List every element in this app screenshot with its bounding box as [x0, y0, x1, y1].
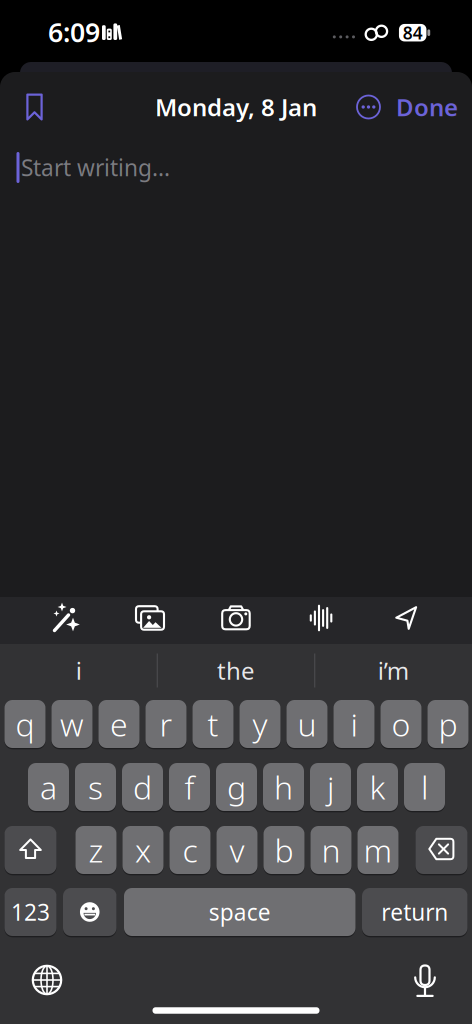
- staticText: k: [369, 766, 385, 808]
- button[interactable]: s: [75, 762, 116, 812]
- button[interactable]: w: [51, 699, 92, 749]
- button[interactable]: Camera: [201, 596, 271, 640]
- staticText: 6:09: [48, 14, 100, 50]
- staticText: b: [274, 829, 293, 871]
- button[interactable]: e: [98, 699, 139, 749]
- button[interactable]: the: [161, 647, 311, 693]
- button[interactable]: Magic assistant: [30, 596, 100, 640]
- button[interactable]: l: [404, 762, 445, 812]
- staticText: y: [252, 703, 267, 745]
- staticText: 84: [403, 21, 423, 44]
- staticText: s: [88, 766, 103, 808]
- staticText: Start writing...: [21, 152, 170, 182]
- staticText: m: [363, 829, 392, 871]
- staticText: d: [133, 766, 152, 808]
- staticText: a: [40, 766, 57, 808]
- staticText: h: [274, 766, 293, 808]
- button[interactable]: x: [122, 825, 163, 875]
- button[interactable]: z: [75, 825, 116, 875]
- button[interactable]: i: [333, 699, 374, 749]
- button[interactable]: Dictation: [398, 951, 452, 1005]
- staticText: n: [321, 829, 340, 871]
- staticText: q: [15, 703, 34, 745]
- staticText: 123: [11, 897, 50, 927]
- staticText: w: [60, 703, 84, 745]
- button[interactable]: space: [124, 887, 355, 937]
- button[interactable]: b: [263, 825, 304, 875]
- button[interactable]: j: [310, 762, 351, 812]
- staticText: Done: [396, 91, 458, 123]
- button[interactable]: g: [216, 762, 257, 812]
- staticText: p: [438, 703, 457, 745]
- button[interactable]: f: [169, 762, 210, 812]
- staticText: o: [391, 703, 410, 745]
- button[interactable]: p: [427, 699, 468, 749]
- staticText: i’m: [378, 655, 409, 686]
- button[interactable]: Delete: [415, 825, 467, 875]
- button[interactable]: Emoji: [63, 887, 116, 937]
- button[interactable]: Location: [371, 596, 441, 640]
- button[interactable]: y: [239, 699, 280, 749]
- button[interactable]: t: [192, 699, 233, 749]
- button[interactable]: i’m: [318, 647, 468, 693]
- button[interactable]: More options: [346, 85, 390, 129]
- button[interactable]: u: [286, 699, 327, 749]
- button[interactable]: v: [216, 825, 257, 875]
- button[interactable]: Audio recording: [286, 596, 356, 640]
- staticText: r: [159, 703, 172, 745]
- staticText: e: [110, 703, 128, 745]
- staticText: j: [327, 766, 334, 808]
- button[interactable]: Bookmark: [12, 85, 56, 129]
- button[interactable]: Shift: [4, 825, 56, 875]
- button[interactable]: Photo library: [115, 596, 185, 640]
- staticText: i: [76, 655, 82, 686]
- staticText: g: [227, 766, 246, 808]
- staticText: space: [209, 897, 271, 927]
- staticText: x: [135, 829, 151, 871]
- staticText: u: [297, 703, 316, 745]
- staticText: t: [207, 703, 218, 745]
- button[interactable]: Next keyboard: [20, 953, 74, 1007]
- button[interactable]: q: [4, 699, 45, 749]
- button[interactable]: m: [357, 825, 398, 875]
- button[interactable]: d: [122, 762, 163, 812]
- button[interactable]: 123: [4, 887, 56, 937]
- button[interactable]: o: [380, 699, 421, 749]
- button[interactable]: return: [362, 887, 467, 937]
- staticText: v: [229, 829, 244, 871]
- staticText: i: [350, 703, 357, 745]
- button[interactable]: n: [310, 825, 351, 875]
- button[interactable]: r: [145, 699, 186, 749]
- button[interactable]: a: [28, 762, 69, 812]
- button[interactable]: Done: [382, 85, 472, 129]
- button[interactable]: c: [169, 825, 210, 875]
- staticText: f: [184, 766, 194, 808]
- button[interactable]: h: [263, 762, 304, 812]
- staticText: c: [182, 829, 197, 871]
- button[interactable]: k: [357, 762, 398, 812]
- staticText: l: [421, 766, 428, 808]
- staticText: the: [217, 655, 255, 686]
- button[interactable]: i: [4, 647, 154, 693]
- staticText: return: [381, 897, 448, 927]
- staticText: Monday, 8 Jan: [155, 91, 317, 123]
- staticText: z: [88, 829, 103, 871]
